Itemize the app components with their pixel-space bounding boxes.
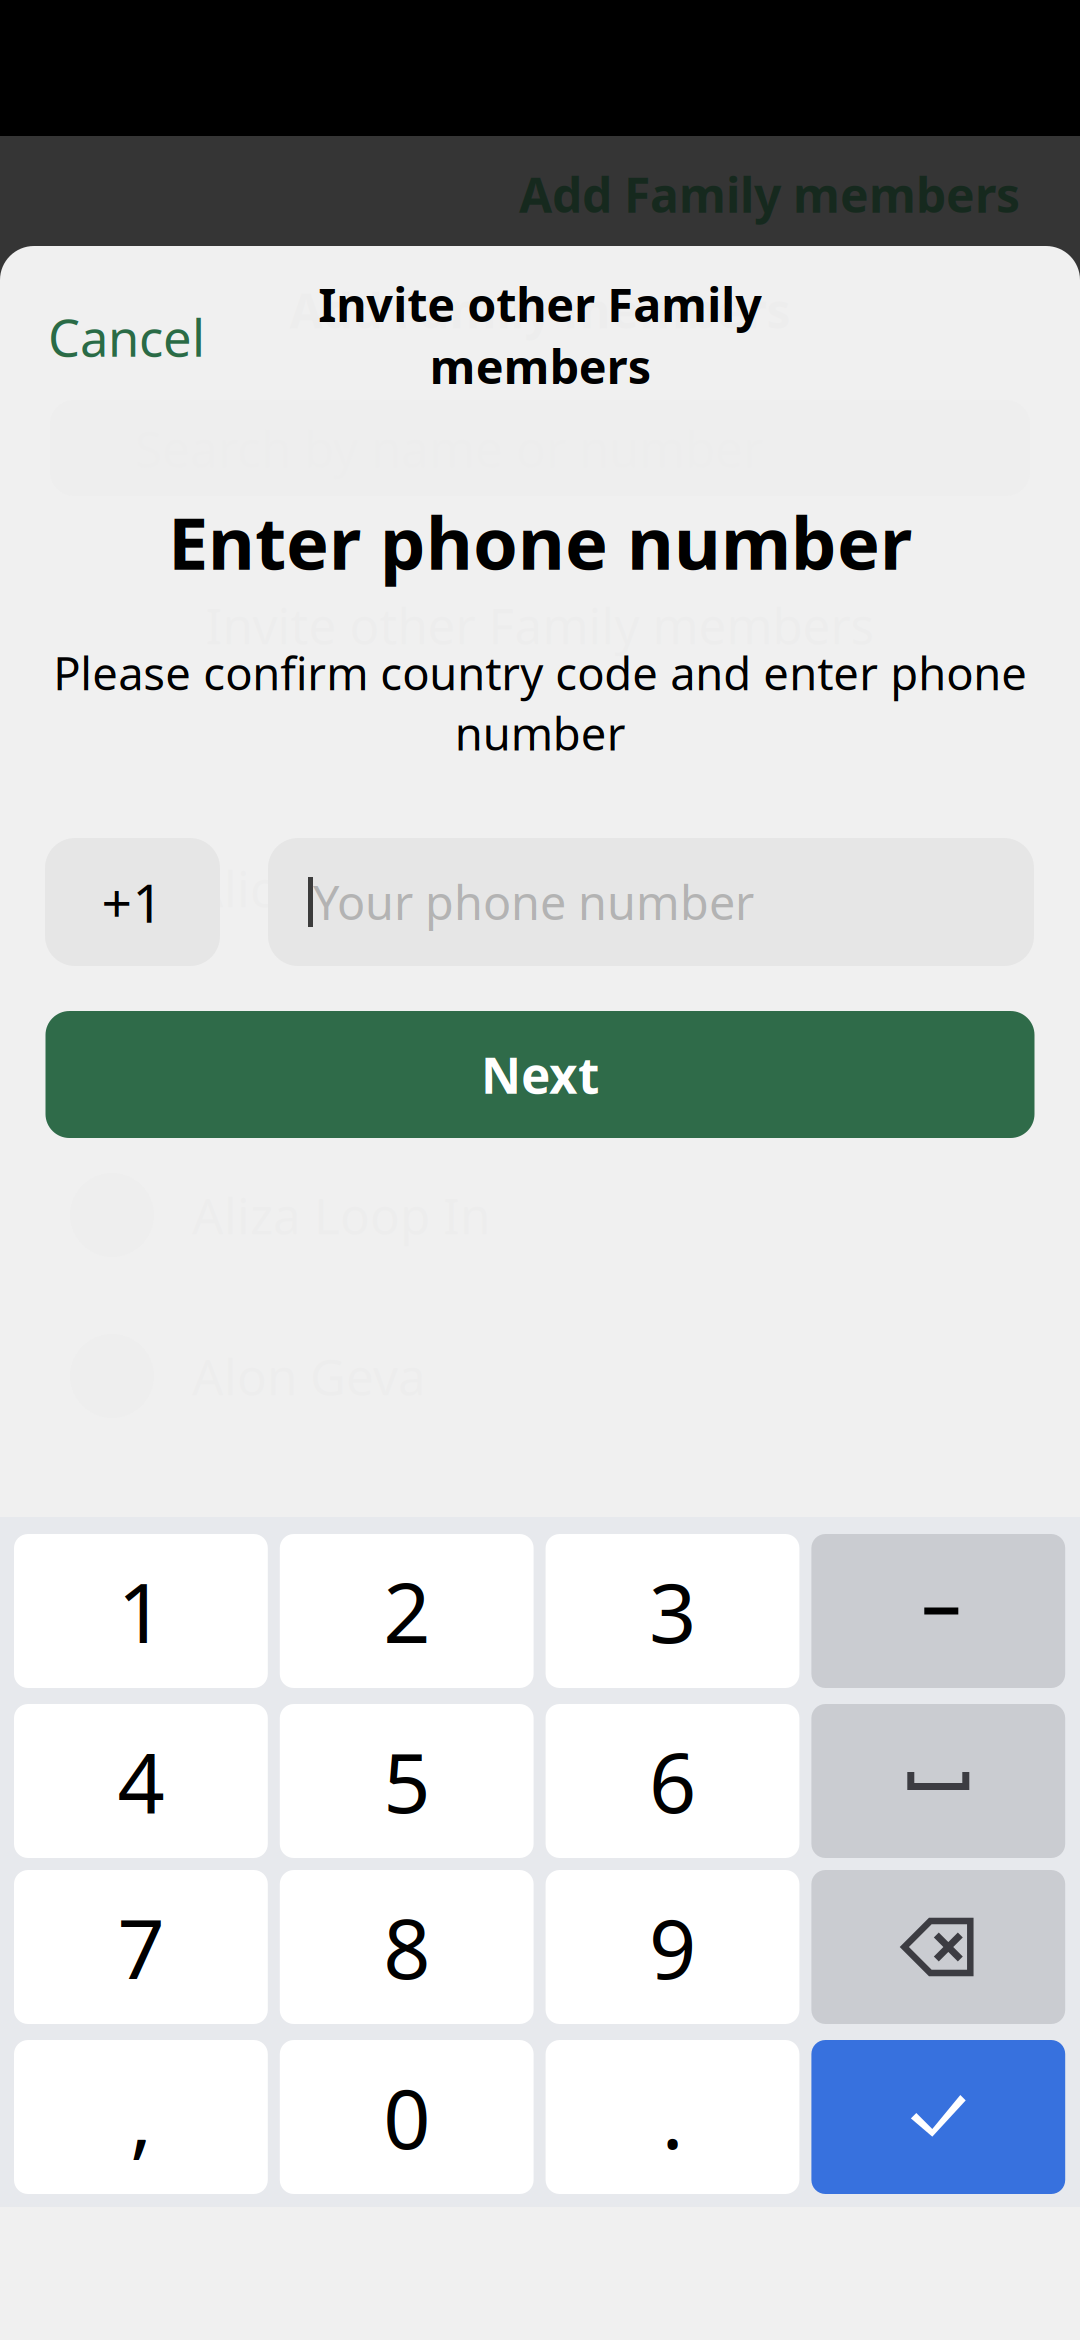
button[interactable]: 6 [546,1704,799,1858]
staticText: 4 [117,1726,164,1836]
staticText: Your phone number [313,871,754,933]
staticText: +1 [101,867,163,937]
button[interactable]: 2 [280,1534,534,1688]
button[interactable]: +1 [45,838,220,966]
staticText: Enter phone number [168,494,912,590]
button[interactable]: Space [811,1704,1065,1858]
staticText: Next [481,1042,599,1107]
button[interactable]: 4 [14,1704,268,1858]
button[interactable]: 3 [546,1534,799,1688]
button[interactable]: Backspace [811,1870,1065,2024]
button[interactable]: , [14,2040,268,2194]
staticText: Add Family members [289,278,790,342]
staticText: Please confirm country code and enter ph… [53,643,1027,763]
button[interactable]: Next [45,1011,1034,1138]
staticText: 5 [383,1726,430,1836]
button[interactable]: . [546,2040,799,2194]
staticText: Invite other Family members [318,273,762,397]
button[interactable]: 7 [14,1870,268,2024]
staticText: , [130,2062,152,2172]
staticText: 9 [649,1892,696,2002]
button[interactable]: 8 [280,1870,534,2024]
staticText: 8 [383,1892,430,2002]
staticText: 0 [383,2062,430,2172]
staticText: 2 [383,1556,430,1666]
button[interactable]: Your phone number [268,838,1034,966]
staticText: 6 [649,1726,696,1836]
button[interactable]: Done [811,2040,1065,2194]
button[interactable]: 1 [14,1534,268,1688]
staticText: 3 [649,1556,696,1666]
button[interactable]: Cancel [0,255,268,379]
button[interactable]: 0 [280,2040,534,2194]
button[interactable]: 5 [280,1704,534,1858]
staticText: 7 [117,1892,164,2002]
staticText: Invite other Family members [205,592,874,658]
staticText: 1 [117,1556,164,1666]
staticText: Add Family members [519,162,1020,226]
staticText: Alice Son-Ben-Josef [192,855,636,921]
button[interactable]: 9 [546,1870,799,2024]
button[interactable]: Minus [811,1534,1065,1688]
staticText: . [661,2062,683,2172]
staticText: Cancel [48,303,205,371]
